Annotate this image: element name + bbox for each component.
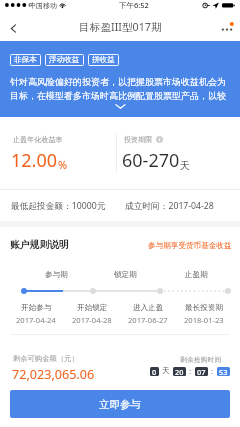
- staticText: 剩余抢购时间: [180, 355, 222, 364]
- staticText: 剩余可购金额（元）: [13, 354, 79, 363]
- button[interactable]: 返回: [0, 15, 26, 41]
- staticText: 进入止盈: [133, 303, 164, 313]
- staticText: 72,023,065.06: [12, 366, 95, 383]
- staticText: 最长投资期: [185, 303, 223, 313]
- staticText: 最低起投金额：10000元: [11, 200, 106, 212]
- staticText: 非保本: [14, 55, 37, 65]
- staticText: 天: [180, 159, 190, 172]
- staticText: 2017-06-27: [128, 315, 168, 325]
- staticText: 止盈年化收益率: [13, 135, 63, 144]
- staticText: :: [189, 366, 192, 376]
- staticText: 2017-04-24: [16, 315, 56, 325]
- staticText: 参与期: [45, 270, 68, 280]
- staticText: 参与期享受货币基金收益: [148, 241, 232, 251]
- staticText: 立即参与: [99, 398, 141, 411]
- staticText: 拼收益: [92, 55, 115, 65]
- button[interactable]: 浮动收益: [49, 54, 80, 66]
- staticText: 账户规则说明: [10, 239, 69, 251]
- staticText: 成立时间：2017-04-28: [125, 200, 214, 212]
- staticText: 2018-01-23: [184, 315, 224, 325]
- staticText: 07: [197, 367, 206, 376]
- staticText: 开始锁定: [77, 303, 108, 313]
- staticText: %: [58, 157, 68, 172]
- staticText: 针对高风险偏好的投资者，以把握股票市场收益机会为: [10, 76, 226, 87]
- staticText: 0: [152, 367, 157, 376]
- staticText: 天: [162, 366, 170, 376]
- button[interactable]: 拼收益: [92, 54, 115, 66]
- staticText: 下午6:52: [119, 0, 149, 10]
- staticText: 12.00: [11, 148, 58, 173]
- staticText: 开始参与: [21, 303, 52, 313]
- staticText: 60-270: [122, 148, 180, 173]
- staticText: 20: [175, 367, 184, 376]
- staticText: :: [211, 366, 214, 376]
- button[interactable]: 非保本: [14, 54, 37, 66]
- button[interactable]: 更多: [214, 15, 240, 41]
- staticText: 2017-04-28: [72, 315, 112, 325]
- staticText: 目标盈III型017期: [79, 20, 162, 35]
- button[interactable]: 展开: [116, 104, 125, 109]
- staticText: 止盈期: [185, 270, 208, 280]
- staticText: 锁定期: [114, 270, 137, 280]
- staticText: 投资期限: [124, 135, 153, 144]
- staticText: 浮动收益: [49, 55, 80, 65]
- staticText: 53: [219, 367, 228, 376]
- staticText: 目标，在模型看多市场时高比例配置股票型产品，以较: [10, 90, 226, 101]
- staticText: 中国移动: [29, 1, 57, 10]
- button[interactable]: 立即参与: [10, 390, 230, 418]
